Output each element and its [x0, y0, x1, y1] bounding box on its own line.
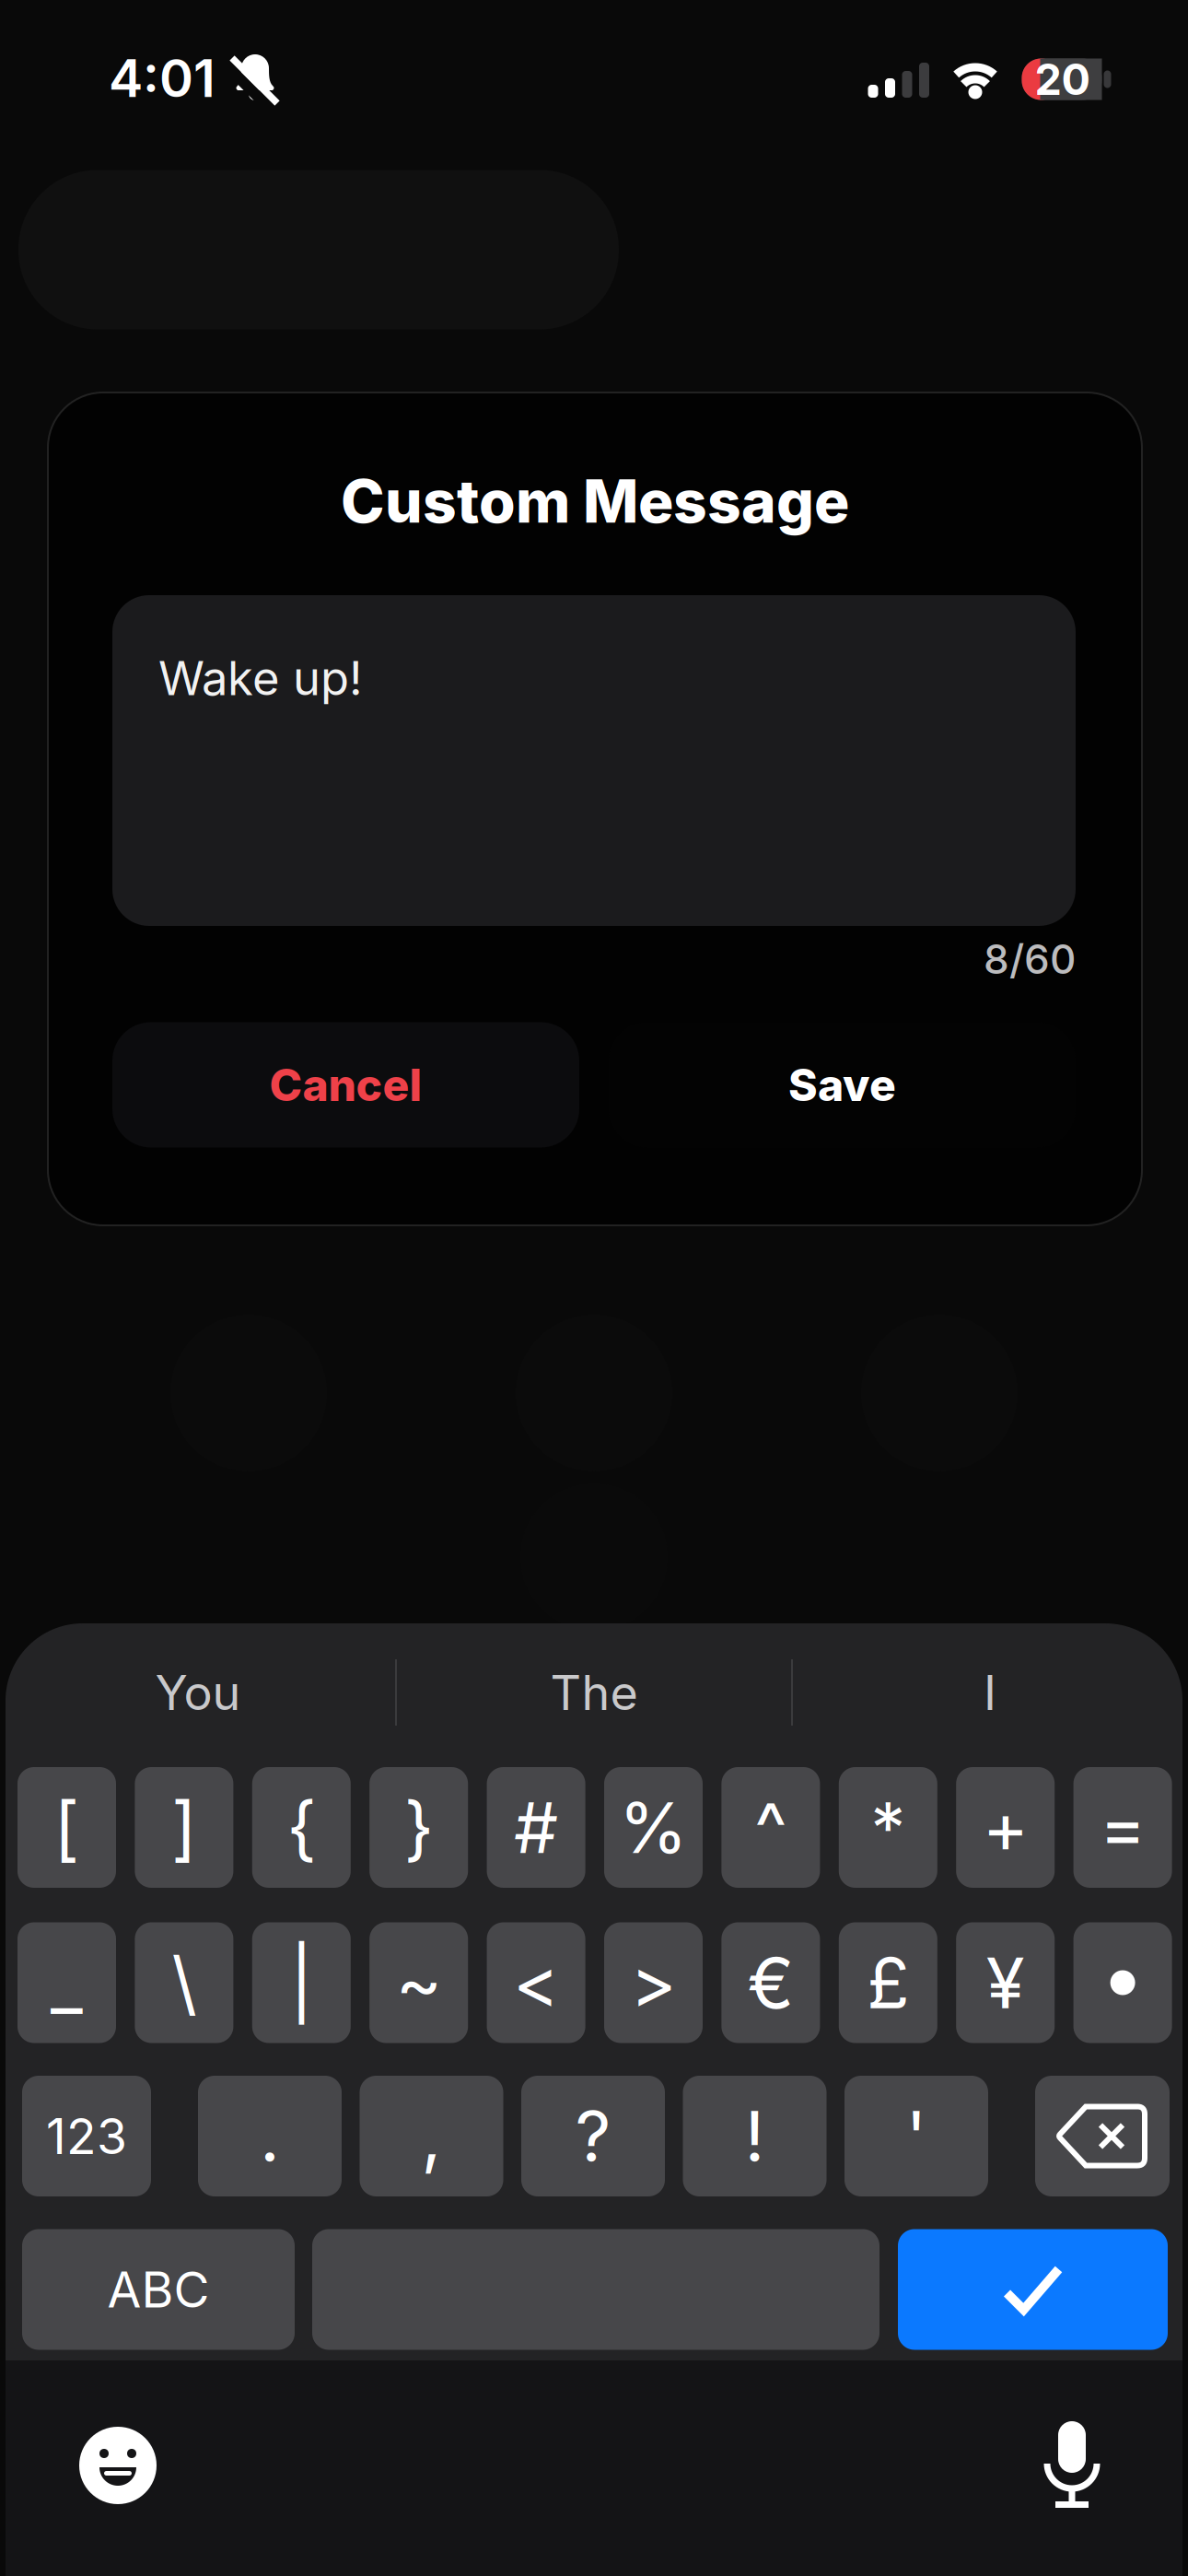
button[interactable]: #: [487, 1767, 585, 1888]
staticText: ]: [171, 1785, 197, 1870]
staticText: |: [290, 1940, 313, 2025]
staticText: {: [287, 1785, 316, 1870]
staticText: ': [906, 2094, 927, 2178]
button[interactable]: |: [252, 1922, 351, 2043]
staticText: Save: [788, 1058, 896, 1112]
button[interactable]: Cancel: [112, 1022, 579, 1147]
staticText: +: [982, 1785, 1028, 1870]
staticText: ABC: [107, 2260, 210, 2319]
button[interactable]: I: [815, 1651, 1165, 1734]
button[interactable]: •: [1073, 1922, 1172, 2043]
staticText: <: [513, 1940, 559, 2025]
staticText: 8/60: [984, 935, 1076, 984]
button[interactable]: £: [839, 1922, 937, 2043]
staticText: 4:01: [109, 47, 215, 110]
button[interactable]: }: [369, 1767, 468, 1888]
staticText: *: [871, 1785, 906, 1870]
button[interactable]: .: [198, 2076, 342, 2196]
staticText: !: [745, 2094, 765, 2178]
staticText: 20: [1035, 53, 1090, 105]
staticText: £: [867, 1940, 909, 2025]
staticText: #: [514, 1785, 558, 1870]
button[interactable]: ]: [135, 1767, 233, 1888]
staticText: ,: [421, 2094, 442, 2178]
button[interactable]: Emoji: [76, 2424, 159, 2507]
button[interactable]: You: [23, 1651, 373, 1734]
button[interactable]: Dictation: [1042, 2419, 1102, 2512]
staticText: \: [172, 1940, 197, 2025]
staticText: ?: [575, 2094, 611, 2178]
staticText: Wake up!: [158, 650, 363, 706]
button[interactable]: [: [17, 1767, 116, 1888]
staticText: >: [630, 1940, 676, 2025]
button[interactable]: !: [683, 2076, 827, 2196]
button[interactable]: ¥: [956, 1922, 1055, 2043]
button[interactable]: _: [17, 1922, 116, 2043]
staticText: I: [984, 1663, 996, 1721]
staticText: €: [747, 1940, 794, 2025]
staticText: ¥: [986, 1940, 1025, 2025]
staticText: =: [1100, 1785, 1146, 1870]
button[interactable]: =: [1073, 1767, 1172, 1888]
staticText: The: [550, 1663, 638, 1721]
staticText: .: [260, 2094, 280, 2178]
staticText: _: [51, 1940, 83, 2025]
staticText: Custom Message: [341, 466, 849, 537]
button[interactable]: <: [487, 1922, 585, 2043]
button[interactable]: ,: [360, 2076, 503, 2196]
button[interactable]: Save: [609, 1022, 1076, 1147]
button[interactable]: +: [956, 1767, 1055, 1888]
button[interactable]: ABC: [22, 2229, 295, 2350]
button[interactable]: >: [604, 1922, 703, 2043]
button[interactable]: The: [419, 1651, 769, 1734]
staticText: You: [155, 1663, 241, 1721]
staticText: %: [619, 1785, 688, 1870]
button[interactable]: Delete: [1035, 2076, 1170, 2196]
staticText: [: [54, 1785, 80, 1870]
button[interactable]: ~: [369, 1922, 468, 2043]
button[interactable]: 123: [22, 2076, 151, 2196]
button[interactable]: Done: [898, 2229, 1168, 2350]
staticText: Cancel: [269, 1058, 422, 1112]
button[interactable]: *: [839, 1767, 937, 1888]
staticText: ^: [754, 1785, 787, 1870]
button[interactable]: %: [604, 1767, 703, 1888]
button[interactable]: ^: [721, 1767, 820, 1888]
staticText: ~: [396, 1940, 442, 2025]
button[interactable]: {: [252, 1767, 351, 1888]
staticText: }: [404, 1785, 433, 1870]
staticText: 123: [46, 2106, 127, 2166]
button[interactable]: ': [844, 2076, 988, 2196]
button[interactable]: €: [721, 1922, 820, 2043]
button[interactable]: \: [135, 1922, 233, 2043]
button[interactable]: ?: [521, 2076, 665, 2196]
